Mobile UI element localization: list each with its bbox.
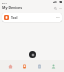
button[interactable]: Home [6, 61, 15, 72]
button[interactable]: Activity [35, 61, 44, 72]
staticText: ON [56, 16, 60, 19]
button[interactable]: Profile [49, 61, 58, 72]
button[interactable]: Devices [20, 61, 29, 72]
button[interactable]: Search [53, 6, 57, 10]
staticText: Tool [11, 16, 18, 20]
button[interactable]: More options [58, 6, 62, 10]
staticText: 9:41 [2, 1, 7, 4]
button[interactable]: Add device [29, 51, 36, 58]
staticText: My Devices [2, 5, 23, 10]
button[interactable]: Tool [2, 13, 62, 22]
